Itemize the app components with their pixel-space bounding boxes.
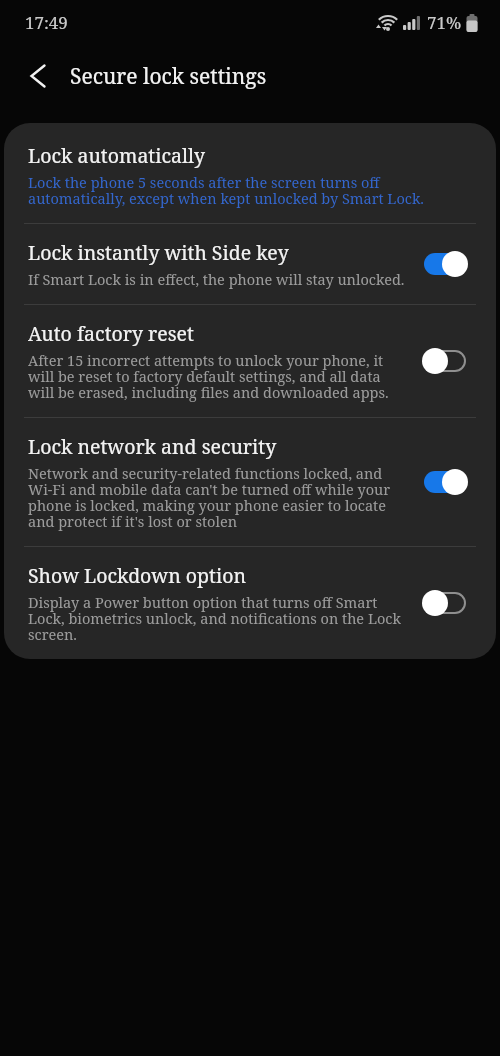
staticText: Lock network and security [28, 433, 277, 460]
staticText: Lock instantly with Side key [28, 239, 289, 266]
staticText: Display a Power button option that turns… [28, 592, 401, 644]
staticText: Show Lockdown option [28, 562, 246, 589]
staticText: After 15 incorrect attempts to unlock yo… [28, 350, 389, 402]
staticText: Lock the phone 5 seconds after the scree… [28, 172, 424, 208]
staticText: Lock automatically [28, 142, 206, 169]
staticText: Auto factory reset [28, 320, 194, 347]
button[interactable] [422, 469, 468, 495]
button[interactable] [422, 590, 468, 616]
button[interactable]: Auto factory reset [4, 305, 496, 417]
button[interactable] [422, 251, 468, 277]
button[interactable]: Show Lockdown option [4, 547, 496, 659]
staticText: Network and security-related functions l… [28, 463, 391, 531]
button[interactable]: Lock instantly with Side key [4, 224, 496, 304]
staticText: 71% [427, 11, 462, 34]
button[interactable]: Lock automatically [4, 127, 496, 223]
button[interactable]: Lock network and security [4, 418, 496, 546]
staticText: Secure lock settings [70, 62, 267, 91]
button[interactable] [16, 54, 60, 98]
button[interactable] [422, 348, 468, 374]
staticText: If Smart Lock is in effect, the phone wi… [28, 269, 405, 289]
staticText: 17:49 [25, 11, 68, 34]
